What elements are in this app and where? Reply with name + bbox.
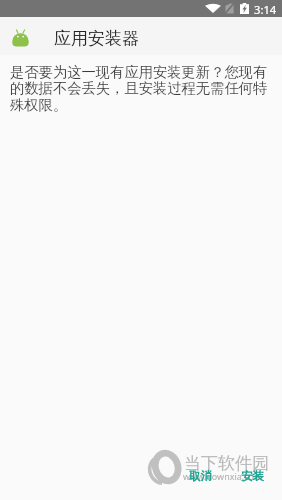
staticText: 当下软件园 xyxy=(184,453,269,474)
button[interactable]: 安装 xyxy=(233,463,272,489)
staticText: 3:14 xyxy=(254,2,277,17)
staticText: 安装 xyxy=(241,469,264,483)
staticText: www.downxia.com xyxy=(183,470,263,482)
staticText: 取消 xyxy=(189,469,212,483)
staticText: 应用安装器 xyxy=(54,28,139,49)
button[interactable]: 取消 xyxy=(181,463,220,489)
staticText: 是否要为这一现有应用安装更新？您现有的数据不会丢失，且安装过程无需任何特殊权限。 xyxy=(10,63,271,115)
